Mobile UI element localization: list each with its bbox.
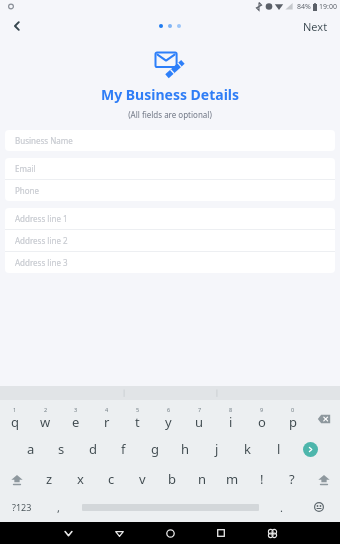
staticText: x: [77, 470, 84, 488]
button[interactable]: l: [263, 434, 294, 464]
staticText: i: [229, 413, 233, 431]
button[interactable]: d: [77, 434, 108, 464]
staticText: 6: [167, 406, 171, 413]
button[interactable]: Next: [291, 13, 340, 39]
button[interactable]: g: [139, 434, 170, 464]
button[interactable]: Address line 2: [5, 230, 335, 251]
button[interactable]: Home: [157, 522, 183, 544]
button[interactable]: Email: [5, 158, 335, 179]
staticText: d: [89, 440, 97, 458]
staticText: s: [58, 440, 65, 458]
button[interactable]: Phone: [5, 180, 335, 201]
staticText: y: [165, 413, 172, 431]
staticText: h: [181, 440, 190, 458]
button[interactable]: Shift: [0, 464, 34, 494]
staticText: Email: [15, 163, 36, 174]
staticText: 84%: [297, 2, 311, 12]
button[interactable]: k: [232, 434, 263, 464]
button[interactable]: ,: [43, 494, 74, 520]
staticText: n: [198, 470, 207, 488]
button[interactable]: 7: [184, 403, 215, 434]
staticText: b: [168, 470, 176, 488]
button[interactable]: 8: [215, 403, 246, 434]
button[interactable]: s: [46, 434, 77, 464]
staticText: r: [104, 413, 110, 431]
staticText: Address line 3: [15, 257, 68, 268]
staticText: u: [195, 413, 204, 431]
staticText: g: [151, 440, 159, 458]
button[interactable]: b: [157, 464, 187, 494]
button[interactable]: 5: [122, 403, 153, 434]
button[interactable]: 2: [30, 403, 60, 434]
staticText: Business Name: [15, 135, 73, 146]
button[interactable]: Emoji: [297, 494, 340, 520]
staticText: t: [135, 413, 140, 431]
staticText: My Business Details: [0, 85, 340, 104]
staticText: !: [260, 470, 264, 488]
staticText: c: [108, 470, 115, 488]
staticText: 9: [260, 406, 264, 413]
staticText: 0: [291, 406, 295, 413]
staticText: ?123: [12, 501, 32, 513]
button[interactable]: Business Name: [5, 130, 335, 151]
staticText: Next: [303, 19, 328, 34]
staticText: 1: [13, 406, 17, 413]
staticText: p: [289, 413, 297, 431]
button[interactable]: Address line 1: [5, 208, 335, 229]
button[interactable]: Hide keyboard: [55, 522, 81, 544]
staticText: 4: [105, 406, 109, 413]
button[interactable]: f: [108, 434, 139, 464]
staticText: z: [46, 470, 53, 488]
staticText: m: [226, 470, 239, 488]
staticText: f: [121, 440, 126, 458]
button[interactable]: a: [15, 434, 46, 464]
button[interactable]: ?123: [0, 494, 43, 520]
staticText: v: [139, 470, 146, 488]
button[interactable]: v: [127, 464, 157, 494]
button[interactable]: n: [187, 464, 217, 494]
button[interactable]: Enter: [294, 434, 326, 464]
staticText: 8: [229, 406, 233, 413]
button[interactable]: 6: [153, 403, 184, 434]
button[interactable]: .: [266, 494, 297, 520]
button[interactable]: 1: [0, 403, 30, 434]
button[interactable]: Backspace: [308, 403, 340, 434]
button[interactable]: Space: [74, 494, 266, 520]
button[interactable]: !: [247, 464, 277, 494]
staticText: 7: [198, 406, 202, 413]
staticText: l: [277, 440, 281, 458]
button[interactable]: z: [34, 464, 65, 494]
button[interactable]: j: [201, 434, 232, 464]
button[interactable]: Back: [106, 522, 132, 544]
button[interactable]: m: [217, 464, 247, 494]
button[interactable]: Address line 3: [5, 252, 335, 273]
staticText: e: [72, 413, 80, 431]
staticText: .: [280, 500, 283, 515]
staticText: 3: [74, 406, 78, 413]
staticText: 2: [44, 406, 48, 413]
staticText: k: [244, 440, 251, 458]
staticText: q: [11, 413, 19, 431]
button[interactable]: Split screen: [259, 522, 285, 544]
staticText: Address line 2: [15, 235, 68, 246]
button[interactable]: 0: [277, 403, 308, 434]
staticText: (All fields are optional): [0, 109, 340, 120]
staticText: 5: [136, 406, 140, 413]
button[interactable]: ?: [277, 464, 307, 494]
staticText: o: [258, 413, 266, 431]
button[interactable]: Shift: [307, 464, 340, 494]
staticText: ,: [57, 500, 60, 515]
button[interactable]: Recents: [208, 522, 234, 544]
staticText: j: [215, 440, 219, 458]
button[interactable]: 3: [60, 403, 91, 434]
staticText: Address line 1: [15, 213, 68, 224]
button[interactable]: h: [170, 434, 201, 464]
staticText: ?: [289, 470, 295, 488]
button[interactable]: 4: [91, 403, 122, 434]
staticText: Phone: [15, 185, 40, 196]
button[interactable]: 9: [246, 403, 277, 434]
button[interactable]: x: [65, 464, 96, 494]
button[interactable]: Back: [0, 13, 34, 39]
staticText: a: [27, 440, 35, 458]
button[interactable]: c: [96, 464, 127, 494]
